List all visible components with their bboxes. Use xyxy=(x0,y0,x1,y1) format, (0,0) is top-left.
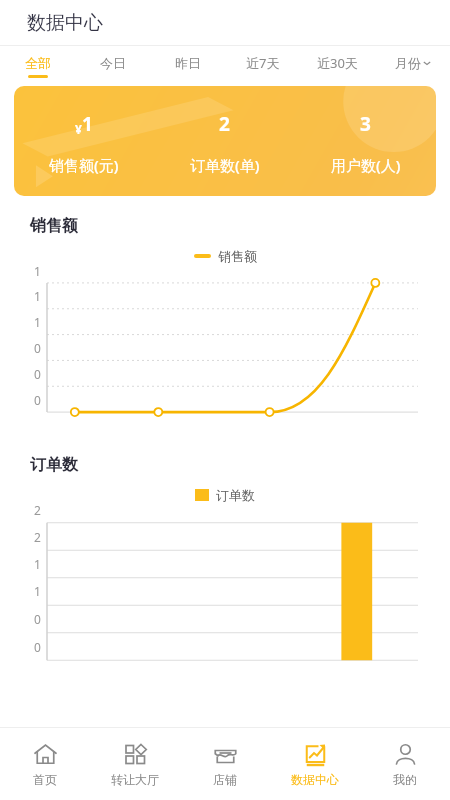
button[interactable]: 近30天 xyxy=(300,46,375,86)
staticText: 近7天 xyxy=(246,54,280,72)
staticText: 近30天 xyxy=(317,54,358,72)
staticText: 用户数(人) xyxy=(331,155,401,175)
staticText: 首页 xyxy=(33,772,57,787)
button[interactable]: 店铺 xyxy=(180,728,270,800)
staticText: 0 xyxy=(34,366,41,382)
button[interactable]: 3 xyxy=(295,86,436,196)
staticText: 0 xyxy=(34,611,41,627)
button[interactable]: 今日 xyxy=(75,46,150,86)
staticText: 1 xyxy=(34,314,41,330)
button[interactable]: 数据中心 xyxy=(270,728,360,800)
staticText: ¥ xyxy=(75,121,82,137)
button[interactable]: 2 xyxy=(154,86,295,196)
staticText: 1 xyxy=(34,583,41,599)
staticText: 销售额(元) xyxy=(49,155,119,175)
staticText: 3 xyxy=(360,111,371,137)
button[interactable]: 我的 xyxy=(360,728,450,800)
button[interactable]: ¥ xyxy=(14,86,154,196)
button[interactable]: 月份 xyxy=(375,46,450,86)
staticText: 1 xyxy=(82,111,93,137)
staticText: 订单数(单) xyxy=(190,155,260,175)
staticText: 店铺 xyxy=(213,772,237,787)
staticText: 月份 xyxy=(395,55,421,71)
staticText: 1 xyxy=(34,263,41,279)
button[interactable]: 近7天 xyxy=(225,46,300,86)
staticText: 2 xyxy=(34,502,41,518)
staticText: 销售额 xyxy=(30,216,78,236)
staticText: 转让大厅 xyxy=(111,772,159,787)
button[interactable]: 昨日 xyxy=(150,46,225,86)
button[interactable]: 全部 xyxy=(0,46,75,86)
staticText: 我的 xyxy=(393,772,417,787)
staticText: 销售额 xyxy=(218,248,257,264)
staticText: 0 xyxy=(34,340,41,356)
button[interactable]: ¥ xyxy=(14,86,436,196)
staticText: 数据中心 xyxy=(291,772,339,787)
staticText: 1 xyxy=(34,288,41,304)
button[interactable]: 首页 xyxy=(0,728,90,800)
staticText: 1 xyxy=(34,556,41,572)
staticText: 昨日 xyxy=(175,55,201,71)
staticText: 0 xyxy=(34,392,41,408)
staticText: 2 xyxy=(219,111,230,137)
staticText: 0 xyxy=(34,639,41,655)
staticText: 全部 xyxy=(25,55,51,71)
staticText: 今日 xyxy=(100,55,126,71)
staticText: 订单数 xyxy=(216,487,255,503)
staticText: 2 xyxy=(34,529,41,545)
button[interactable]: 转让大厅 xyxy=(90,728,180,800)
staticText: 数据中心 xyxy=(27,11,103,35)
staticText: 订单数 xyxy=(30,455,78,475)
